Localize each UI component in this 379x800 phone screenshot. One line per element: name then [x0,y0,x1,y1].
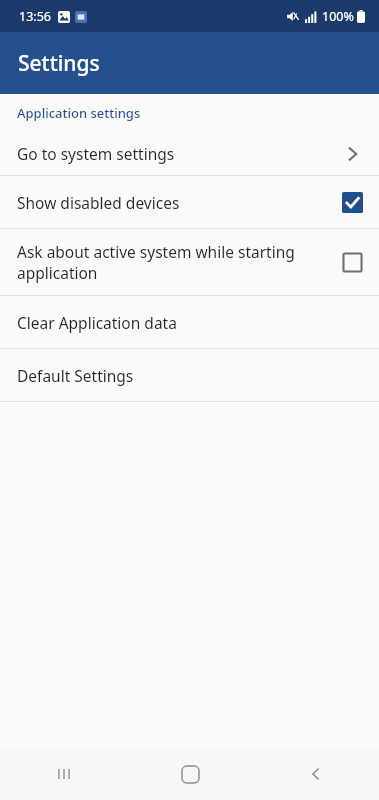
staticText: Application settings [17,104,141,122]
staticText: Default Settings [17,365,134,386]
staticText: Go to system settings [17,143,343,164]
button[interactable]: Recent apps [0,748,127,800]
staticText: Settings [18,49,100,78]
button[interactable]: Ask about active system while starting a… [0,229,379,295]
button[interactable]: Go to system settings [0,132,379,175]
staticText: Show disabled devices [17,192,326,213]
button[interactable]: Home [127,748,253,800]
button[interactable]: Back [253,748,379,800]
staticText: 100% [322,8,354,25]
button[interactable]: Show disabled devices [0,176,379,228]
staticText: Clear Application data [17,312,177,333]
button[interactable]: Default Settings [0,349,379,401]
button[interactable]: Clear Application data [0,296,379,348]
staticText: 13:56 [19,8,51,25]
staticText: Ask about active system while starting a… [17,241,326,283]
